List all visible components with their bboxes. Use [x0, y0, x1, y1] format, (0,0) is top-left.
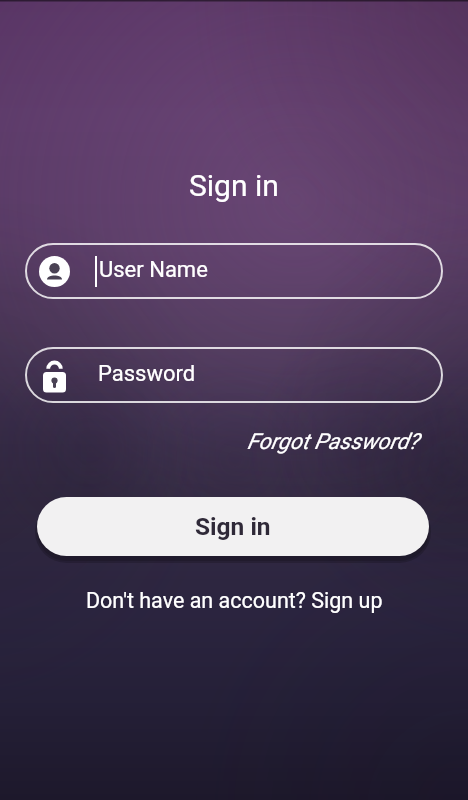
- staticText: Password: [98, 361, 196, 387]
- staticText: User Name: [99, 257, 208, 283]
- button[interactable]: User Name: [25, 243, 443, 299]
- button[interactable]: Don't have an account? Sign up: [86, 588, 383, 613]
- staticText: Sign in: [189, 168, 279, 203]
- button[interactable]: Sign in: [37, 497, 429, 556]
- button[interactable]: Forgot Password?: [247, 429, 419, 455]
- button[interactable]: Password: [25, 347, 443, 403]
- staticText: Sign in: [195, 512, 271, 541]
